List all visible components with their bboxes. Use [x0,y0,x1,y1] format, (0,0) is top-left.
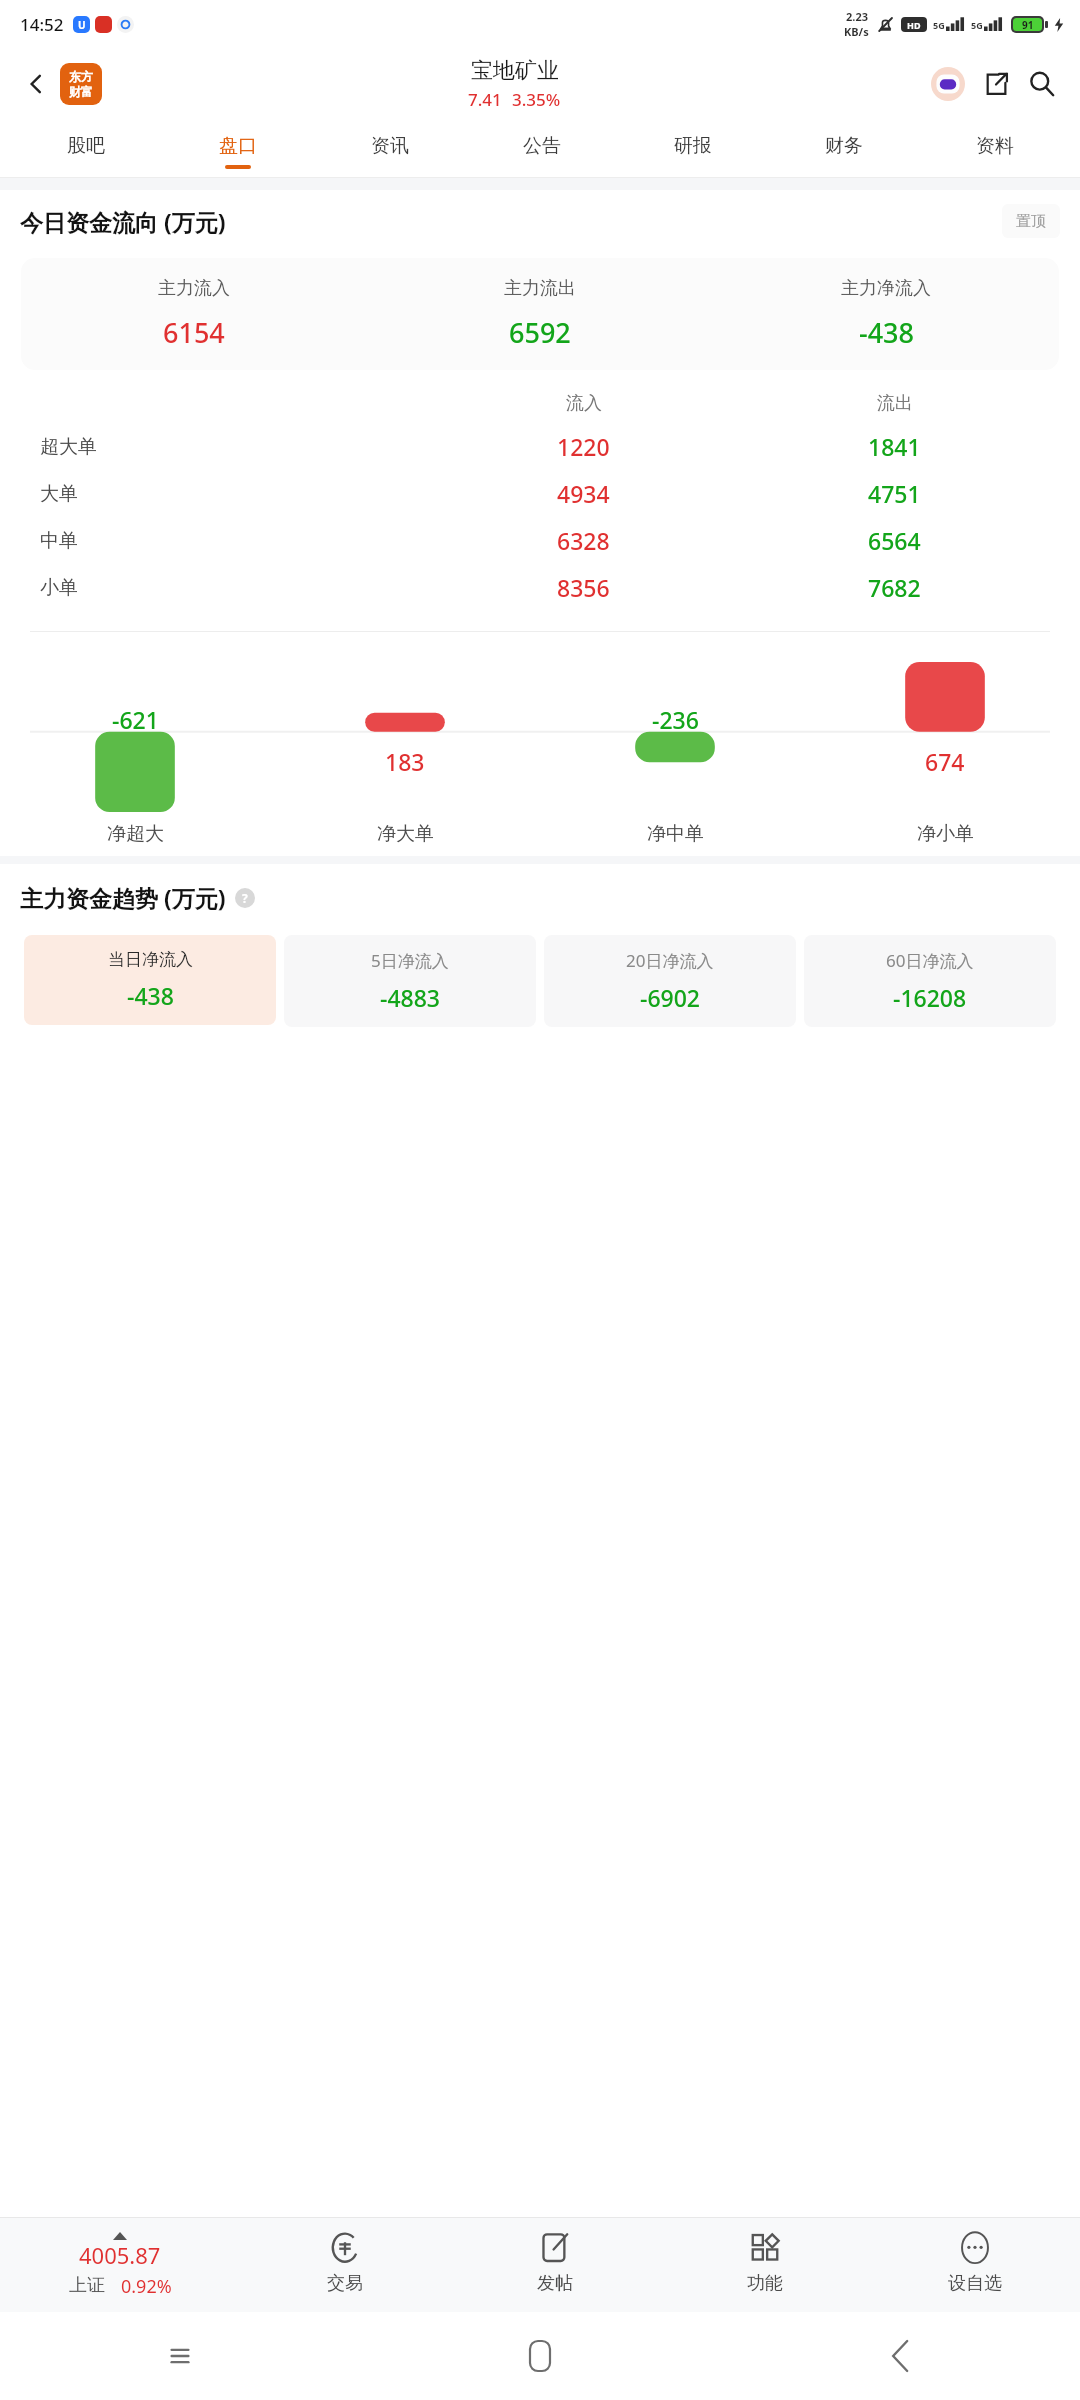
staticText: 主力流入 [158,277,230,300]
staticText: 183 [385,746,425,777]
staticText: 6564 [868,525,921,556]
button[interactable]: 财务 [768,120,919,177]
button[interactable]: 60日净流入 [804,935,1056,1027]
staticText: 财务 [825,134,863,158]
staticText: 5G [971,19,983,31]
staticText: 2.23 [846,9,868,24]
button[interactable]: 当日净流入 [24,935,276,1025]
button[interactable]: 大单 [40,478,1050,509]
staticText: 超大单 [40,435,97,459]
staticText: 财富 [69,84,93,99]
staticText: 研报 [674,134,712,158]
button[interactable]: Help [235,888,255,908]
button[interactable]: 宝地矿业 [468,57,561,111]
button[interactable]: 设自选 [870,2218,1080,2312]
staticText: 净大单 [377,822,434,846]
button[interactable]: Back [720,2312,1080,2400]
button[interactable]: 主力流入 [21,277,1059,351]
button[interactable]: East Money [60,63,102,105]
staticText: 6592 [509,314,571,351]
button[interactable]: 674 [810,632,1080,856]
button[interactable]: -236 [540,632,810,856]
staticText: -621 [112,704,159,735]
staticText: 14:52 [20,13,64,36]
button[interactable]: Search [1020,62,1064,106]
staticText: 今日资金流向 (万元) [20,206,226,237]
staticText: 5G [933,19,945,31]
button[interactable]: Recents [0,2312,360,2400]
staticText: 净小单 [917,822,974,846]
button[interactable]: 中单 [40,525,1050,556]
button[interactable]: Back [16,64,56,104]
button[interactable]: 盘口 [162,120,314,177]
staticText: 股吧 [67,134,105,158]
staticText: -4883 [380,982,441,1013]
staticText: KB/s [844,24,869,39]
button[interactable]: 资料 [919,120,1070,177]
staticText: ? [242,890,248,906]
staticText: 公告 [523,134,561,158]
staticText: 1220 [557,431,610,462]
button[interactable]: 20日净流入 [544,935,796,1027]
button[interactable]: 5日净流入 [284,935,536,1027]
staticText: 6154 [163,314,225,351]
staticText: 盘口 [219,134,257,158]
staticText: 发帖 [537,2272,573,2295]
staticText: 设自选 [948,2272,1002,2295]
staticText: 主力资金趋势 (万元) [20,882,226,913]
staticText: 60日净流入 [886,949,974,972]
staticText: 20日净流入 [626,949,714,972]
staticText: 小单 [40,576,78,600]
staticText: U [78,18,86,32]
button[interactable]: 置顶 [1002,204,1060,238]
button[interactable]: 功能 [660,2218,870,2312]
staticText: 5日净流入 [371,949,449,972]
button[interactable]: 超大单 [40,431,1050,462]
staticText: 资料 [976,134,1014,158]
staticText: -16208 [893,982,967,1013]
staticText: 流入 [566,392,602,415]
staticText: 资讯 [371,134,409,158]
staticText: 净中单 [647,822,704,846]
staticText: 主力流出 [504,277,576,300]
staticText: HD [907,19,921,31]
staticText: 大单 [40,482,78,506]
staticText: 功能 [747,2272,783,2295]
staticText: -438 [127,980,174,1011]
staticText: 3.35% [512,88,561,111]
button[interactable]: Home [360,2312,720,2400]
staticText: 上证 [69,2274,105,2297]
staticText: 4005.87 [79,2240,161,2270]
button[interactable]: Share [974,62,1018,106]
staticText: 交易 [327,2272,363,2295]
staticText: 当日净流入 [108,949,193,970]
button[interactable]: 183 [270,632,540,856]
staticText: 1841 [868,431,921,462]
button[interactable]: 小单 [40,572,1050,603]
button[interactable]: 股吧 [10,120,162,177]
button[interactable]: 公告 [466,120,617,177]
staticText: 主力净流入 [841,277,931,300]
button[interactable]: 资讯 [314,120,466,177]
staticText: 4751 [868,478,921,509]
staticText: -438 [859,314,914,351]
staticText: 7682 [868,572,921,603]
staticText: 净超大 [107,822,164,846]
staticText: 4934 [557,478,610,509]
staticText: 0.92% [121,2274,172,2299]
button[interactable]: 研报 [617,120,768,177]
button[interactable]: -621 [0,632,270,856]
staticText: 674 [925,746,965,777]
button[interactable]: 交易 [240,2218,450,2312]
staticText: -6902 [640,982,701,1013]
staticText: 91 [1022,18,1034,31]
button[interactable]: 4005.87 [0,2232,240,2299]
staticText: 宝地矿业 [471,57,559,85]
staticText: 7.41 [468,88,502,111]
staticText: 流出 [877,392,913,415]
staticText: 置顶 [1016,212,1046,231]
staticText: -236 [652,704,699,735]
button[interactable]: AI assistant [928,64,968,104]
button[interactable]: 发帖 [450,2218,660,2312]
staticText: 东方 [69,69,93,84]
